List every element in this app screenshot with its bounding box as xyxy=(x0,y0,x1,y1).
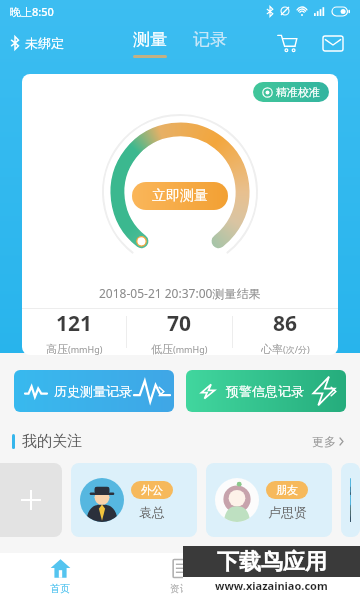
staticText: 高压 xyxy=(46,342,68,355)
staticText: (mmHg) xyxy=(173,343,208,355)
staticText: 袁总 xyxy=(139,504,165,520)
staticText: 立即测量 xyxy=(152,187,208,205)
staticText: 121 xyxy=(56,309,93,338)
staticText: 我的关注 xyxy=(22,432,82,451)
button[interactable]: 记录 xyxy=(187,29,233,50)
staticText: 首页 xyxy=(50,582,70,595)
staticText: 朋友 xyxy=(276,483,298,497)
button[interactable]: 预警信息记录 xyxy=(186,370,346,412)
staticText: 历史测量记录 xyxy=(54,383,132,399)
button[interactable]: 立即测量 xyxy=(132,182,228,210)
staticText: 外公 xyxy=(141,483,163,497)
staticText: 70 xyxy=(167,309,192,338)
button[interactable]: 更多 xyxy=(308,430,348,453)
button[interactable]: 测量 xyxy=(127,29,173,58)
staticText: (mmHg) xyxy=(68,343,103,355)
staticText: 2018-05-21 20:37:00测量结果 xyxy=(99,285,261,301)
button[interactable]: 我的 xyxy=(240,553,360,600)
staticText: 卢思贤 xyxy=(268,504,307,520)
staticText: www.xiazainiao.com xyxy=(215,578,328,593)
staticText: 下载鸟应用 xyxy=(217,548,327,576)
staticText: 86 xyxy=(273,309,298,338)
staticText: 未绑定 xyxy=(25,35,64,51)
staticText: 我的 xyxy=(290,582,310,595)
staticText: 测量 xyxy=(133,29,167,50)
button[interactable]: Shopping cart xyxy=(270,26,304,60)
staticText: 更多 xyxy=(312,434,336,449)
staticText: 记录 xyxy=(193,29,227,50)
staticText: 晚上8:50 xyxy=(10,4,54,19)
button[interactable]: Add contact xyxy=(0,463,62,537)
button[interactable] xyxy=(341,463,360,537)
staticText: 预警信息记录 xyxy=(226,383,304,399)
button[interactable]: 历史测量记录 xyxy=(14,370,174,412)
staticText: 低压 xyxy=(151,342,173,355)
button[interactable]: 资讯 xyxy=(120,553,240,600)
button[interactable]: Messages xyxy=(316,26,350,60)
button[interactable]: 朋友 xyxy=(206,463,332,537)
staticText: (次/分) xyxy=(283,343,310,355)
staticText: 精准校准 xyxy=(276,85,320,99)
button[interactable]: 外公 xyxy=(71,463,197,537)
button[interactable]: 未绑定 xyxy=(8,30,66,56)
staticText: 资讯 xyxy=(170,582,190,595)
button[interactable]: 精准校准 xyxy=(253,82,329,102)
button[interactable]: 首页 xyxy=(0,553,120,600)
staticText: 心率 xyxy=(261,342,283,355)
